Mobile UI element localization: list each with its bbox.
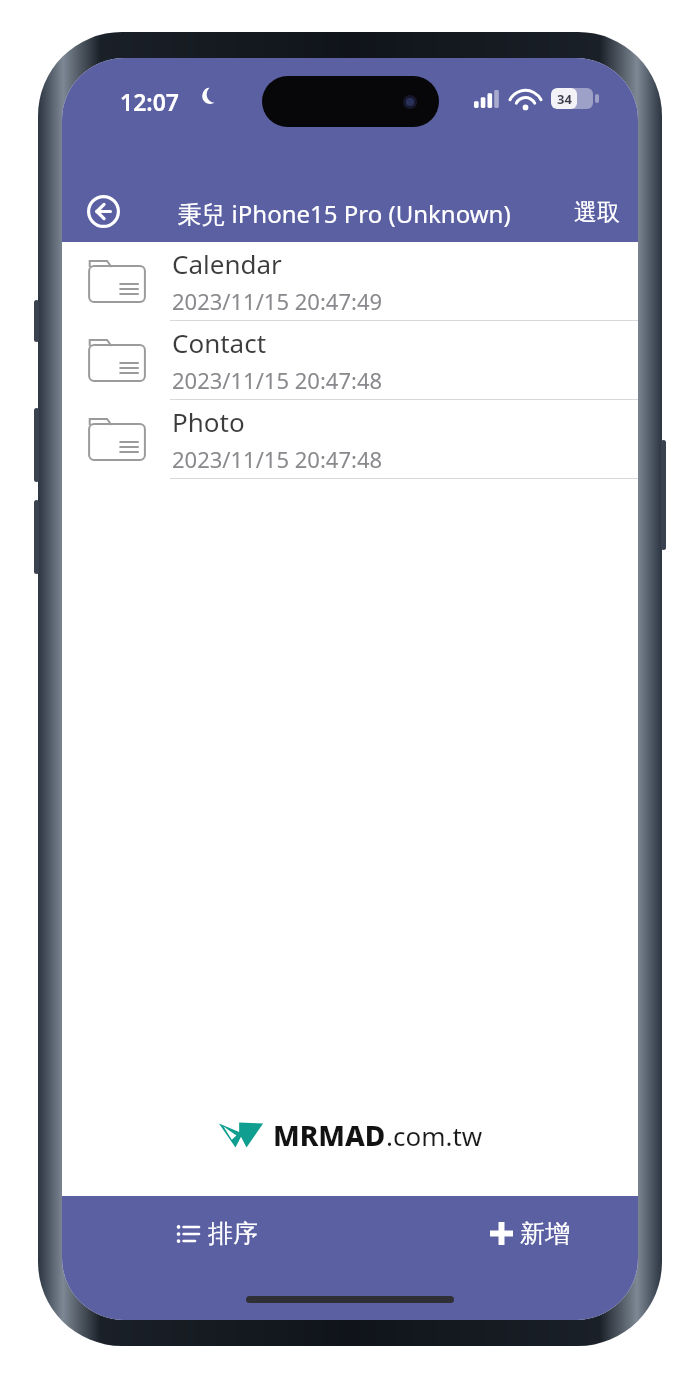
button[interactable]: Photo [62,400,638,479]
button[interactable]: 新增 [480,1210,580,1257]
staticText: 新增 [520,1218,570,1249]
staticText: 2023/11/15 20:47:48 [172,365,383,395]
button[interactable]: 排序 [167,1210,268,1257]
button[interactable]: Contact [62,321,638,400]
staticText: Calendar [172,246,282,281]
staticText: 2023/11/15 20:47:49 [172,286,383,316]
button[interactable]: 選取 [564,190,630,235]
staticText: Photo [172,404,245,439]
staticText: 34 [557,90,572,108]
button[interactable]: Calendar [62,242,638,321]
staticText: 12:07 [120,86,179,117]
staticText: 2023/11/15 20:47:48 [172,444,383,474]
staticText: Contact [172,325,267,360]
button[interactable]: Back [80,188,126,234]
staticText: .com.tw [386,1118,483,1153]
staticText: MRMAD [273,1116,386,1154]
staticText: 秉兒 iPhone15 Pro (Unknown) [177,197,511,230]
staticText: 排序 [208,1218,258,1249]
staticText: 選取 [574,198,620,227]
